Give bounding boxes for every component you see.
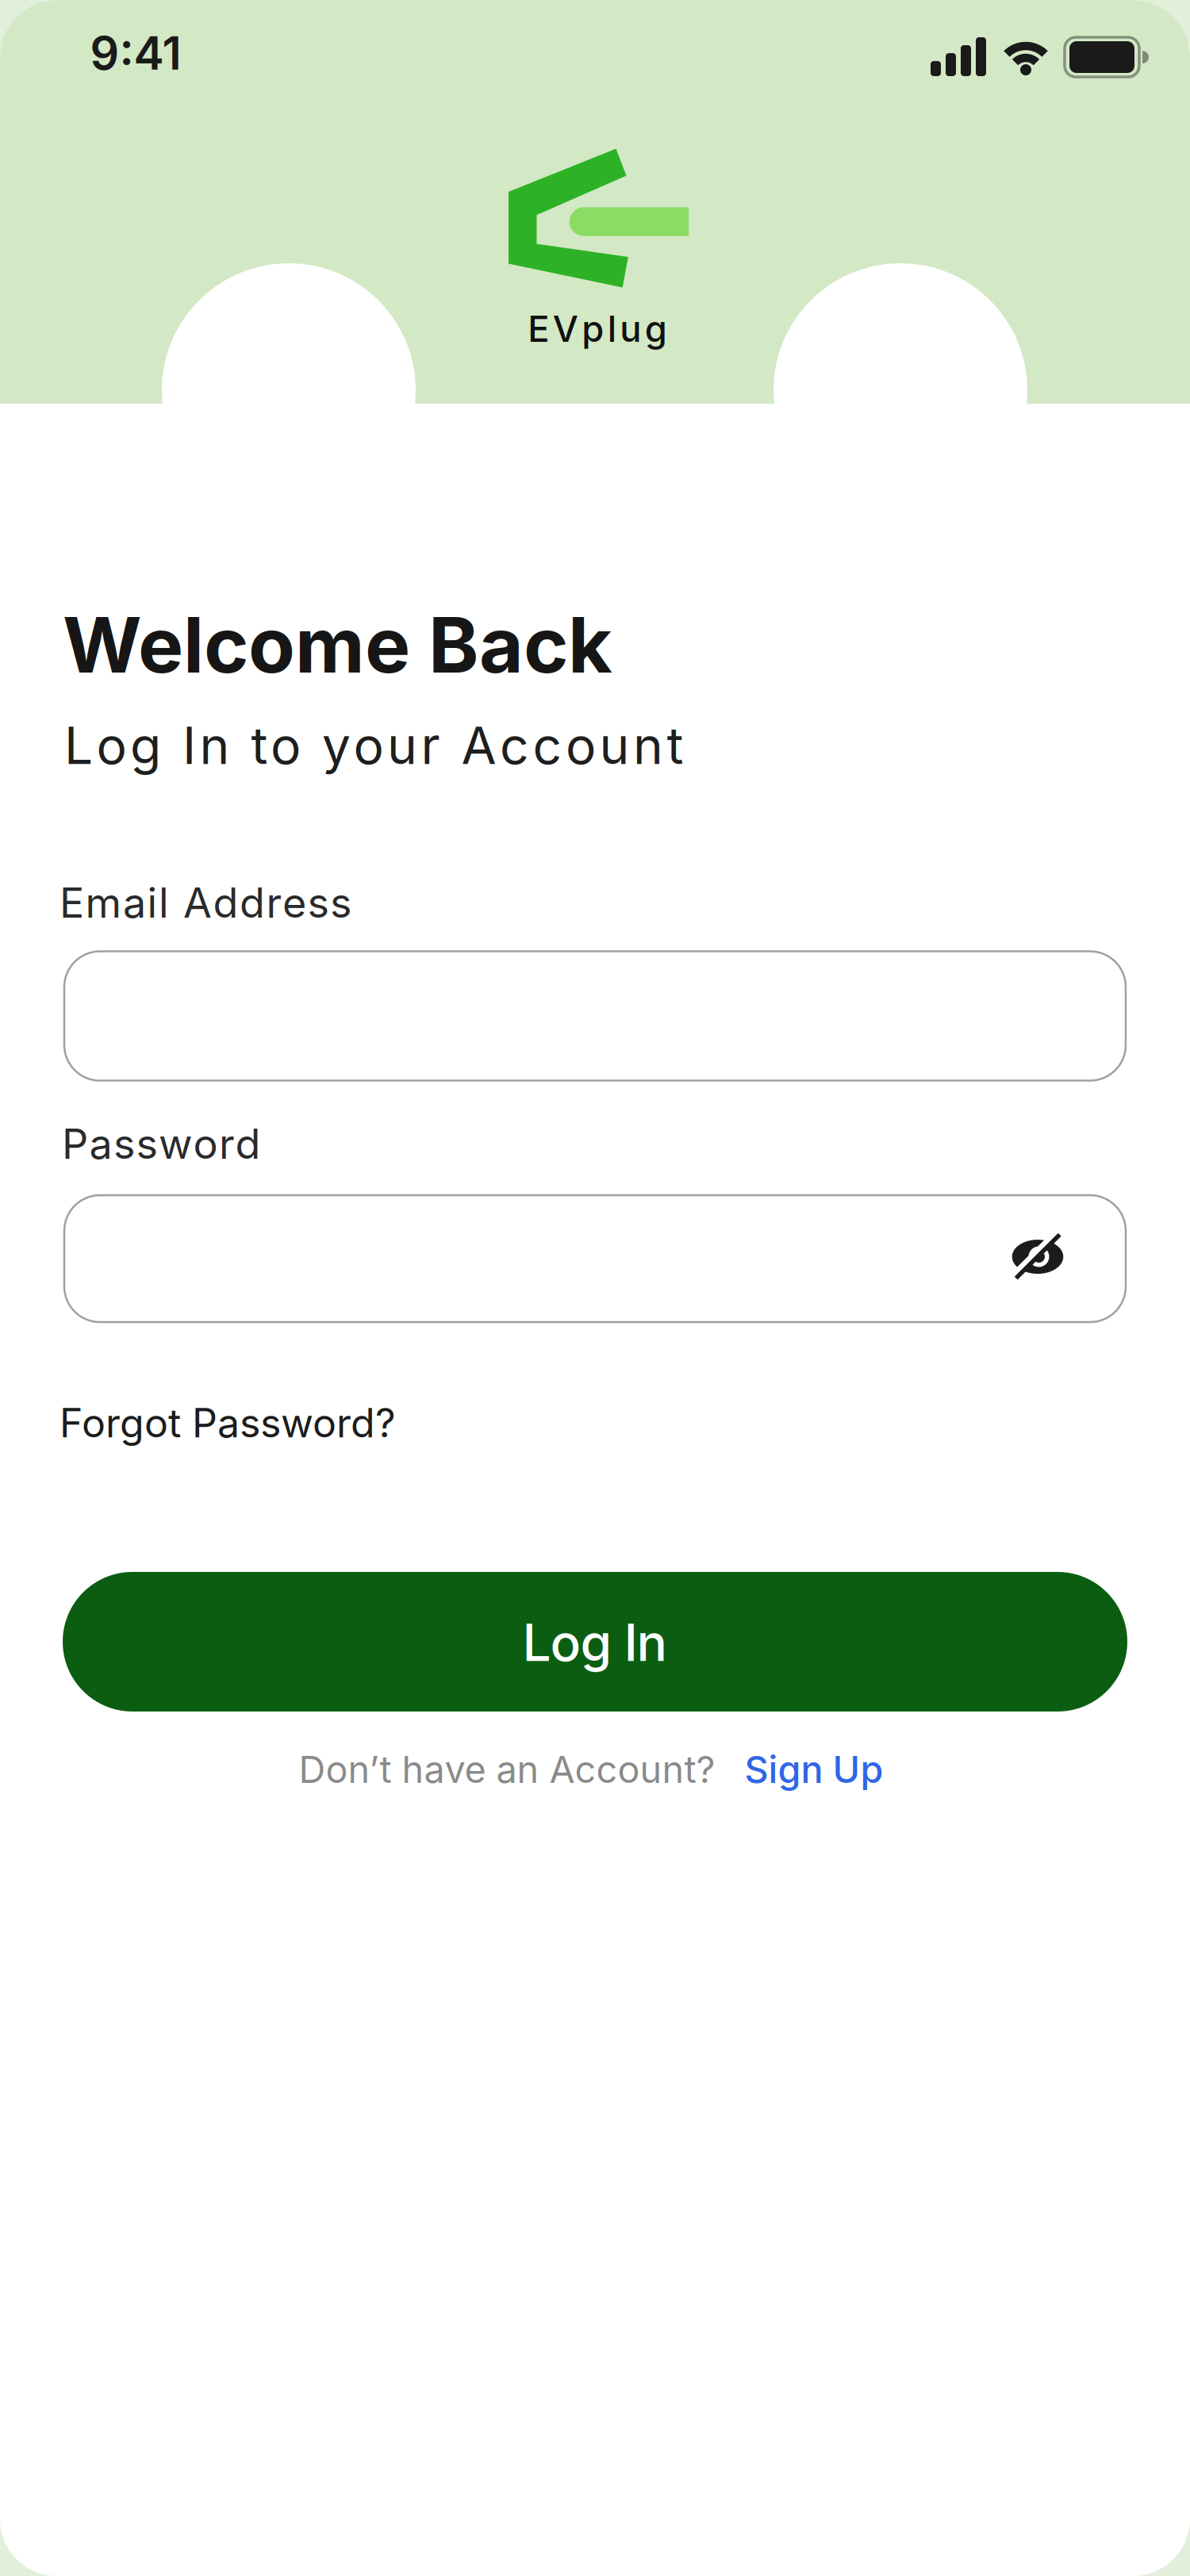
staticText: Log In to your Account [64,715,683,776]
staticText: Don’t have an Account? [299,1747,715,1792]
staticText: Sign Up [745,1747,883,1792]
staticText: Password [62,1119,261,1169]
staticText: Log In [522,1612,668,1673]
staticText: Forgot Password? [59,1399,396,1447]
staticText: EVplug [528,307,667,351]
staticText: Email Address [59,878,351,927]
staticText: Welcome Back [63,599,612,691]
staticText: 9:41 [90,26,181,81]
